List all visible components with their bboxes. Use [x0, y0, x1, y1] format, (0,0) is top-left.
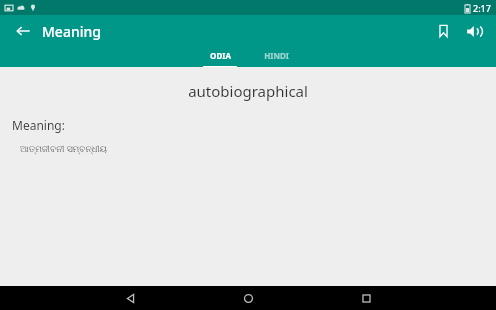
button[interactable]: Bookmark [428, 16, 458, 46]
button[interactable]: ODIA [198, 47, 242, 67]
staticText: ODIA [210, 50, 231, 61]
staticText: autobiographical [0, 81, 496, 101]
staticText: Meaning [42, 22, 101, 41]
staticText: Meaning: [12, 117, 65, 133]
staticText: 2:17 [473, 2, 491, 14]
button[interactable]: Back [113, 286, 147, 310]
staticText: HINDI [264, 50, 289, 61]
button[interactable]: HINDI [254, 47, 298, 67]
button[interactable]: Recent apps [349, 286, 383, 310]
button[interactable]: Back [8, 16, 38, 46]
staticText: ଆତ୍ମଜୀବନୀ ସମ୍ବନ୍ଧୀୟ [20, 142, 108, 154]
button[interactable]: Pronounce [458, 16, 488, 46]
button[interactable]: Home [231, 286, 265, 310]
